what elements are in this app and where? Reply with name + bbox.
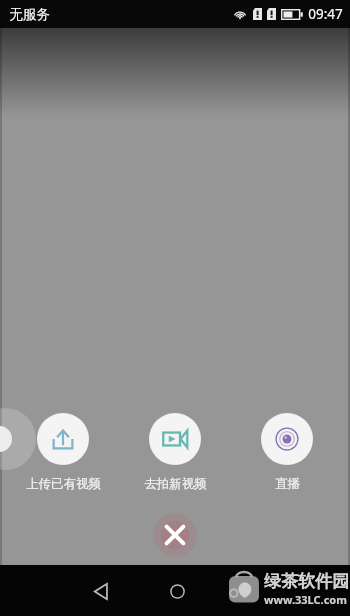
staticText: 无服务 [9, 6, 50, 23]
staticText: 直播 [275, 476, 300, 492]
staticText: 09:47 [308, 5, 343, 23]
button[interactable]: 返回 [78, 569, 122, 613]
staticText: 去拍新视频 [144, 476, 207, 492]
staticText: www.33LC.com [264, 592, 347, 607]
button[interactable]: 直播 [238, 411, 336, 494]
button[interactable]: 去拍新视频 [126, 411, 224, 494]
button[interactable]: 上传已有视频 [14, 411, 112, 494]
button[interactable]: 关闭 [151, 511, 199, 559]
staticText: 上传已有视频 [26, 476, 101, 492]
staticText: 绿茶软件园 [264, 571, 349, 592]
button[interactable]: 主屏幕 [155, 569, 199, 613]
